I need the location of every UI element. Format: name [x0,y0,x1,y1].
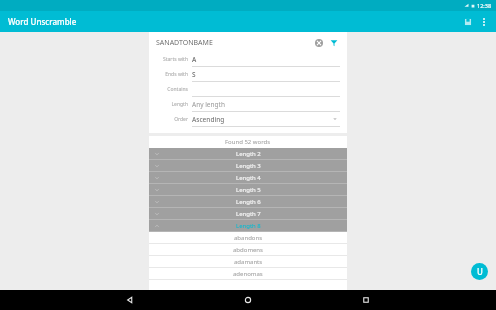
staticText: abandons [234,234,263,242]
staticText: Length [156,101,188,108]
staticText: Any length [192,100,340,109]
staticText: Length 3 [236,162,261,170]
button[interactable]: Clear [313,37,325,49]
staticText: A [192,55,340,64]
staticText: SANADTONBAME [156,38,313,48]
button[interactable]: Length 4 [149,172,347,183]
button[interactable]: Length 3 [149,160,347,171]
staticText: Found 52 words [225,138,271,146]
button[interactable]: Filter [328,37,340,49]
button[interactable]: adamants [149,256,347,267]
staticText: U [477,266,483,277]
button[interactable]: abdomens [149,244,347,255]
button[interactable]: abandons [149,232,347,243]
button[interactable]: Unscramble [471,263,488,280]
staticText: Length 2 [236,150,261,158]
staticText: adenomas [233,270,263,278]
staticText: Length 4 [236,174,261,182]
button[interactable]: Length 6 [149,196,347,207]
staticText: Ends with [156,71,188,78]
button[interactable]: Recent apps [356,290,376,310]
staticText: Length 7 [236,210,261,218]
staticText: Length 6 [236,198,261,206]
staticText: Length 5 [236,186,261,194]
staticText: Starts with [156,56,188,63]
button[interactable]: Length 2 [149,148,347,159]
button[interactable]: Home [238,290,258,310]
button[interactable]: Back [120,290,140,310]
button[interactable]: Length 7 [149,208,347,219]
staticText: Length 8 [236,222,261,230]
staticText: Order [156,116,188,123]
button[interactable]: Save [461,15,475,29]
staticText: abdomens [233,246,263,254]
staticText: S [192,70,340,79]
staticText: Word Unscramble [8,16,77,27]
button[interactable]: adenomas [149,268,347,279]
staticText: adamants [234,258,263,266]
button[interactable]: More options [477,15,491,29]
staticText: Ascending [192,115,332,124]
button[interactable]: Length 8 [149,220,347,231]
button[interactable]: Length 5 [149,184,347,195]
staticText: 12:38 [477,2,492,9]
staticText: Contains [156,86,188,93]
